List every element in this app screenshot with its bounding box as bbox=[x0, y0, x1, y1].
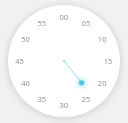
button[interactable]: Seconds picker dial bbox=[0, 0, 128, 123]
